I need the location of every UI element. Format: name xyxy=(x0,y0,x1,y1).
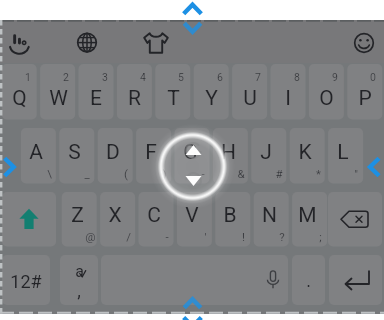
staticText: _ xyxy=(84,167,90,180)
staticText: L xyxy=(337,140,349,165)
button[interactable]: S xyxy=(59,128,95,184)
staticText: 0 xyxy=(370,71,376,83)
button[interactable]: Keyboard theme xyxy=(134,24,176,62)
staticText: D xyxy=(106,140,120,165)
staticText: ) xyxy=(162,167,167,180)
staticText: E xyxy=(90,86,102,111)
staticText: . xyxy=(306,270,311,291)
staticText: M xyxy=(298,203,317,228)
staticText: S xyxy=(68,140,81,165)
staticText: W xyxy=(49,86,68,111)
button[interactable]: Enter xyxy=(329,255,382,305)
button[interactable]: J xyxy=(251,128,287,184)
staticText: ? xyxy=(279,230,285,243)
staticText: V xyxy=(185,203,199,228)
staticText: U xyxy=(243,86,257,111)
button[interactable]: E xyxy=(78,64,114,120)
staticText: 1 xyxy=(25,71,31,83)
button[interactable]: Backspace xyxy=(328,192,382,247)
button[interactable]: B xyxy=(215,192,251,247)
button[interactable]: Shift xyxy=(2,192,56,247)
button[interactable]: Space xyxy=(101,255,288,305)
staticText: I xyxy=(285,86,291,111)
staticText: 12# xyxy=(10,271,42,292)
staticText: & xyxy=(237,167,245,180)
staticText: 6 xyxy=(217,71,223,83)
staticText: 5 xyxy=(178,71,184,83)
staticText: - xyxy=(165,230,169,243)
staticText: 7 xyxy=(255,71,261,83)
button[interactable]: Emoji xyxy=(343,24,384,62)
button[interactable]: N xyxy=(253,192,289,247)
button[interactable]: V xyxy=(176,192,212,247)
staticText: O xyxy=(319,86,334,111)
button[interactable]: F xyxy=(135,128,171,184)
button[interactable]: W xyxy=(39,64,75,120)
staticText: , xyxy=(77,280,81,301)
button[interactable]: Move keyboard xyxy=(162,133,226,197)
staticText: @ xyxy=(85,230,96,243)
staticText: F xyxy=(145,140,157,165)
staticText: # xyxy=(275,167,283,180)
button[interactable]: Voice typing xyxy=(10,24,50,62)
staticText: 8 xyxy=(294,71,300,83)
staticText: 4 xyxy=(140,71,146,83)
staticText: 9 xyxy=(332,71,338,83)
staticText: a xyxy=(75,262,84,281)
button[interactable]: P xyxy=(347,64,383,120)
staticText: P xyxy=(358,86,372,111)
button[interactable]: Change language xyxy=(66,24,108,62)
staticText: - xyxy=(201,167,205,180)
button[interactable]: O xyxy=(308,64,344,120)
button[interactable]: Q xyxy=(1,64,37,120)
button[interactable]: Y xyxy=(193,64,229,120)
staticText: K xyxy=(298,140,312,165)
button[interactable]: Resize keyboard bottom edge xyxy=(176,292,210,320)
staticText: / xyxy=(126,230,131,243)
staticText: ! xyxy=(242,230,245,243)
button[interactable]: M xyxy=(291,192,327,247)
staticText: Y xyxy=(205,86,218,111)
button[interactable]: C xyxy=(138,192,174,247)
button[interactable]: Period xyxy=(292,255,325,305)
button[interactable]: A xyxy=(20,128,56,184)
staticText: " xyxy=(354,167,358,180)
button[interactable]: G xyxy=(174,128,210,184)
staticText: H xyxy=(221,140,236,165)
staticText: B xyxy=(223,203,237,228)
button[interactable]: K xyxy=(289,128,325,184)
button[interactable]: Comma xyxy=(60,255,98,305)
staticText: Z xyxy=(71,203,84,228)
button[interactable]: L xyxy=(327,128,363,184)
staticText: X xyxy=(108,203,122,228)
button[interactable]: R xyxy=(116,64,152,120)
staticText: 2 xyxy=(63,71,69,83)
staticText: * xyxy=(316,167,321,180)
staticText: R xyxy=(128,86,141,111)
staticText: N xyxy=(262,203,277,228)
button[interactable]: Z xyxy=(61,192,97,247)
button[interactable]: U xyxy=(231,64,267,120)
staticText: T xyxy=(167,86,180,111)
staticText: C xyxy=(147,203,161,228)
button[interactable]: X xyxy=(99,192,135,247)
button[interactable]: H xyxy=(212,128,248,184)
staticText: Q xyxy=(12,86,27,111)
staticText: A xyxy=(29,140,43,165)
staticText: ' xyxy=(204,230,207,243)
staticText: \ xyxy=(47,167,52,180)
button[interactable]: T xyxy=(155,64,191,120)
button[interactable]: Resize keyboard left edge xyxy=(0,150,20,184)
button[interactable]: I xyxy=(270,64,306,120)
staticText: ; xyxy=(319,230,322,243)
staticText: 3 xyxy=(102,71,108,83)
button[interactable]: Resize keyboard right edge xyxy=(364,150,384,184)
staticText: G xyxy=(183,140,198,165)
staticText: ( xyxy=(124,167,128,180)
staticText: J xyxy=(260,140,272,165)
button[interactable]: Resize keyboard top edge xyxy=(176,0,210,36)
button[interactable]: Symbols and numbers xyxy=(2,255,50,305)
button[interactable]: D xyxy=(97,128,133,184)
